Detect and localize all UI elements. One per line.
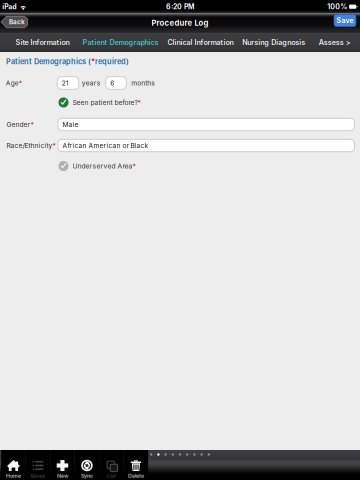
staticText: required) [95,57,129,66]
button[interactable]: Underserved Area [58,161,135,171]
staticText: Seen patient before? [72,98,137,107]
staticText: * [19,79,22,87]
button[interactable]: List [99,450,124,480]
button[interactable]: African American or Black [58,139,354,152]
staticText: Race/Ethnicity [6,141,52,150]
staticText: Save [336,16,353,25]
button[interactable]: Home [1,450,26,480]
button[interactable]: Save [334,17,356,29]
staticText: Back [9,18,25,26]
button[interactable]: Delete [124,450,148,480]
staticText: African American or Black [62,141,148,149]
staticText: Patient Demographics [83,38,159,47]
staticText: Saved [30,472,45,479]
staticText: Home [6,472,21,479]
staticText: Gender [6,120,30,129]
staticText: * [132,162,135,170]
staticText: 21 [62,79,69,87]
button[interactable]: New [50,450,75,480]
button[interactable]: Nursing Diagnosis [242,33,305,52]
button[interactable]: Male [58,118,354,131]
button[interactable]: Assess > [319,33,351,52]
staticText: Age [6,79,19,87]
button[interactable]: Back [0,16,28,29]
staticText: Nursing Diagnosis [242,38,305,47]
staticText: Site Information [16,38,70,47]
staticText: Delete [128,472,144,479]
staticText: months [131,79,155,87]
staticText: 6 [110,79,114,87]
staticText: * [30,120,33,129]
staticText: Underserved Area [72,162,132,170]
staticText: * [52,141,55,150]
button[interactable]: 21 [57,77,79,89]
staticText: Patient Demographics ( [6,57,91,66]
button[interactable]: 6 [106,77,126,89]
staticText: * [137,98,140,107]
staticText: List [107,472,116,479]
staticText: Assess > [319,38,351,47]
button[interactable]: Patient Demographics [83,33,159,52]
button[interactable]: Site Information [16,33,70,52]
staticText: Procedure Log [151,18,208,28]
staticText: Male [62,120,78,128]
staticText: * [91,57,95,66]
staticText: 6:20 PM [166,2,194,11]
staticText: 100% [327,2,347,11]
button[interactable]: Saved [26,450,50,480]
staticText: iPad [2,2,16,11]
staticText: years [82,79,101,87]
staticText: Sync [81,472,93,479]
button[interactable]: Clinical Information [168,33,234,52]
staticText: Clinical Information [168,38,234,47]
staticText: New [57,472,68,479]
button[interactable]: Seen patient before? [58,97,140,107]
button[interactable]: Sync [75,450,99,480]
